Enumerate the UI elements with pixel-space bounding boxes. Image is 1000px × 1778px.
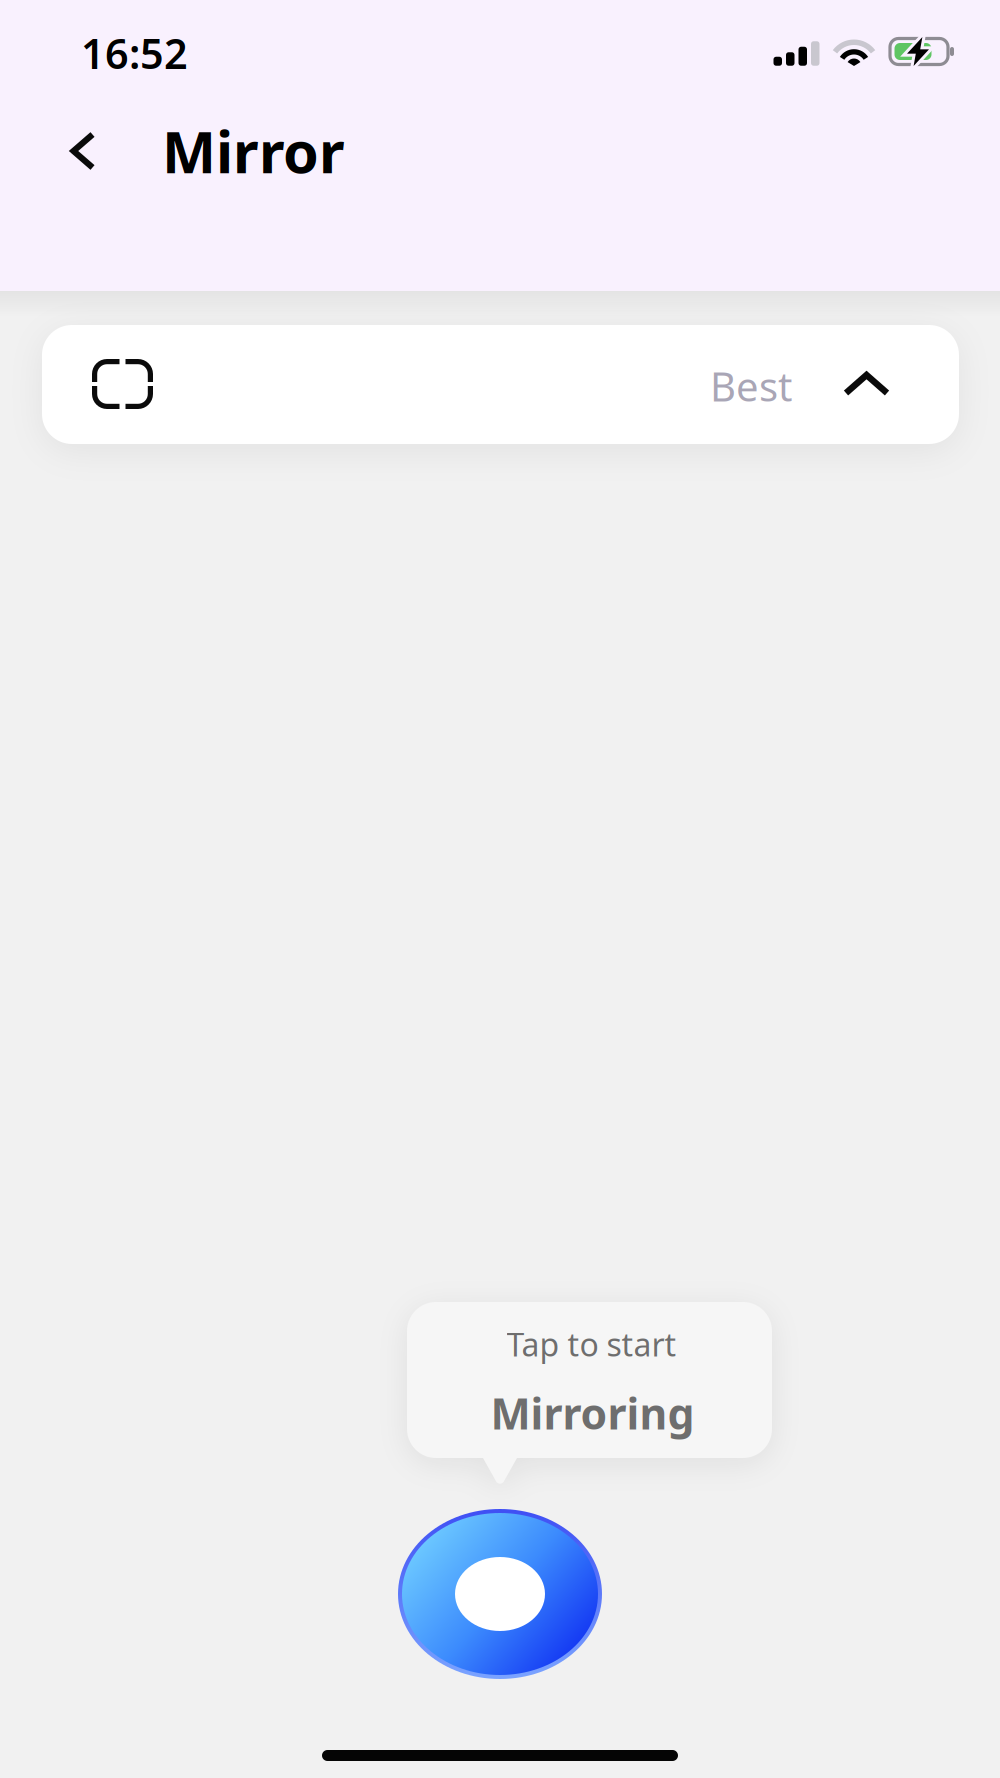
button[interactable]: Best: [42, 325, 959, 444]
button[interactable]: Start mirroring: [394, 1505, 606, 1683]
staticText: Tap to start: [506, 1323, 676, 1365]
button[interactable]: Back: [35, 105, 131, 197]
staticText: Best: [710, 359, 792, 412]
staticText: Mirror: [162, 113, 345, 189]
staticText: Mirroring: [490, 1385, 694, 1441]
staticText: 16:52: [81, 26, 188, 80]
